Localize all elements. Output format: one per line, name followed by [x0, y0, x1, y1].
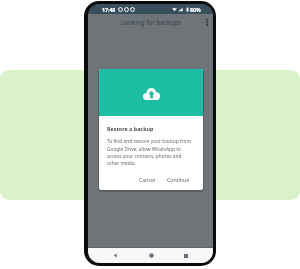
button[interactable]: Back: [107, 248, 123, 263]
button[interactable]: Continue: [163, 174, 194, 185]
staticText: Restore a backup: [107, 125, 154, 132]
staticText: Continue: [167, 176, 190, 183]
button[interactable]: Cancel: [135, 174, 160, 185]
staticText: Cancel: [139, 176, 156, 183]
button[interactable]: Home: [143, 248, 159, 263]
staticText: To find and restore your backup from Goo…: [107, 138, 191, 166]
staticText: Looking for backups: [121, 18, 182, 26]
button[interactable]: Recent apps: [178, 248, 194, 263]
staticText: 80%: [190, 6, 201, 13]
staticText: 17:48: [102, 6, 116, 13]
button[interactable]: More options: [201, 17, 212, 28]
